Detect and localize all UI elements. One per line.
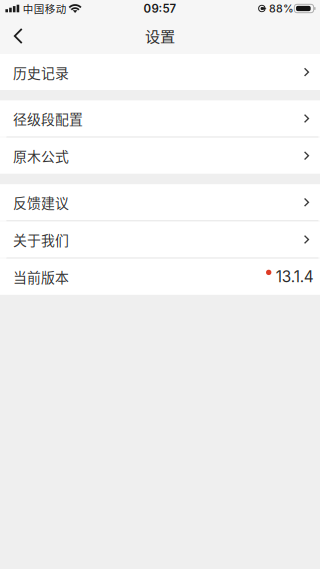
button[interactable]: 关于我们 (0, 221, 320, 258)
staticText: 关于我们 (13, 229, 69, 250)
staticText: 09:57 (143, 2, 176, 15)
button[interactable]: 反馈建议 (0, 184, 320, 220)
button[interactable]: 原木公式 (0, 138, 320, 174)
staticText: 设置 (145, 24, 175, 46)
button[interactable]: 径级段配置 (0, 100, 320, 137)
button[interactable]: Back (0, 14, 36, 51)
staticText: 中国移动 (23, 1, 67, 16)
staticText: 13.1.4 (276, 267, 314, 286)
staticText: 原木公式 (13, 146, 69, 166)
staticText: 径级段配置 (13, 108, 83, 129)
staticText: 88% (269, 2, 294, 15)
staticText: 反馈建议 (13, 192, 69, 212)
button[interactable]: 历史记录 (0, 54, 320, 90)
staticText: 当前版本 (13, 267, 69, 287)
staticText: 历史记录 (13, 62, 69, 82)
